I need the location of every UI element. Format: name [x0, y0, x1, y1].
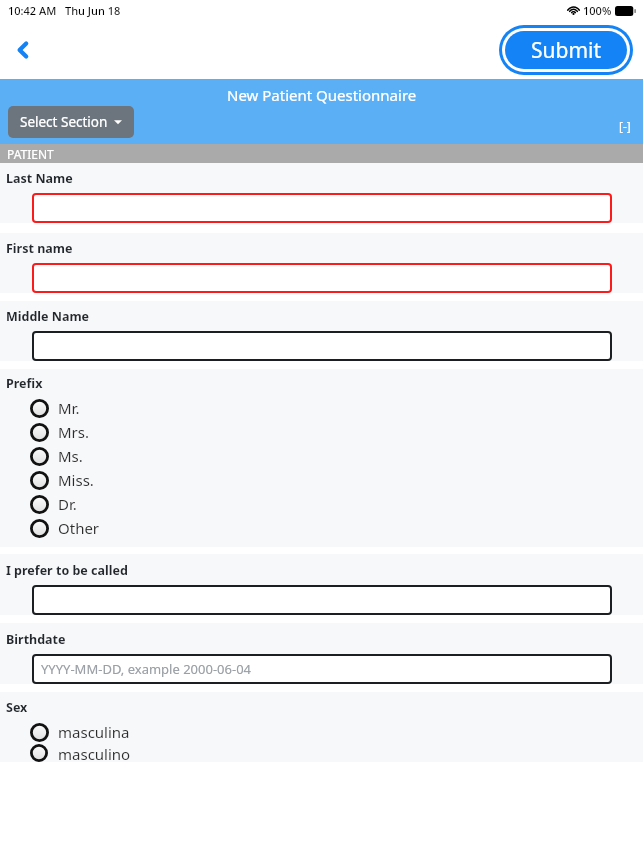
staticText: Miss. — [58, 470, 94, 490]
staticText: Sex — [6, 699, 28, 716]
staticText: Birthdate — [6, 631, 66, 648]
staticText: I prefer to be called — [6, 562, 128, 579]
staticText: Middle Name — [6, 308, 90, 325]
button[interactable]: Ms. — [0, 444, 643, 468]
button[interactable] — [32, 263, 612, 293]
staticText: Prefix — [6, 375, 43, 392]
staticText: 100% — [583, 3, 612, 18]
staticText: Mrs. — [58, 422, 90, 442]
staticText: Mr. — [58, 398, 80, 418]
staticText: Dr. — [58, 494, 77, 514]
staticText: First name — [6, 240, 73, 257]
staticText: Select Section — [20, 113, 108, 131]
button[interactable]: Dr. — [0, 492, 643, 516]
button[interactable]: Mr. — [0, 396, 643, 420]
staticText: PATIENT — [7, 146, 54, 162]
button[interactable]: Mrs. — [0, 420, 643, 444]
staticText: New Patient Questionnaire — [227, 85, 417, 105]
staticText: Submit — [531, 36, 602, 65]
button[interactable] — [32, 331, 612, 361]
staticText: Other — [58, 518, 100, 538]
button[interactable]: Collapse section — [615, 116, 635, 136]
staticText: [-] — [619, 118, 631, 134]
staticText: 10:42 AM — [8, 3, 57, 18]
staticText: masculina — [58, 722, 130, 742]
button[interactable]: Submit — [499, 25, 633, 75]
staticText: Last Name — [6, 170, 73, 187]
staticText: masculino — [58, 744, 131, 762]
button[interactable]: Select Section — [8, 106, 134, 138]
button[interactable]: masculino — [0, 744, 643, 762]
button[interactable]: PATIENT — [0, 144, 643, 163]
staticText: YYYY-MM-DD, example 2000-06-04 — [41, 660, 252, 678]
staticText: Ms. — [58, 446, 83, 466]
staticText: Thu Jun 18 — [65, 3, 121, 18]
button[interactable]: YYYY-MM-DD, example 2000-06-04 — [32, 654, 612, 684]
button[interactable]: Other — [0, 516, 643, 540]
button[interactable] — [32, 193, 612, 223]
button[interactable]: Back — [6, 33, 40, 67]
button[interactable]: Miss. — [0, 468, 643, 492]
button[interactable]: masculina — [0, 720, 643, 744]
button[interactable] — [32, 585, 612, 615]
